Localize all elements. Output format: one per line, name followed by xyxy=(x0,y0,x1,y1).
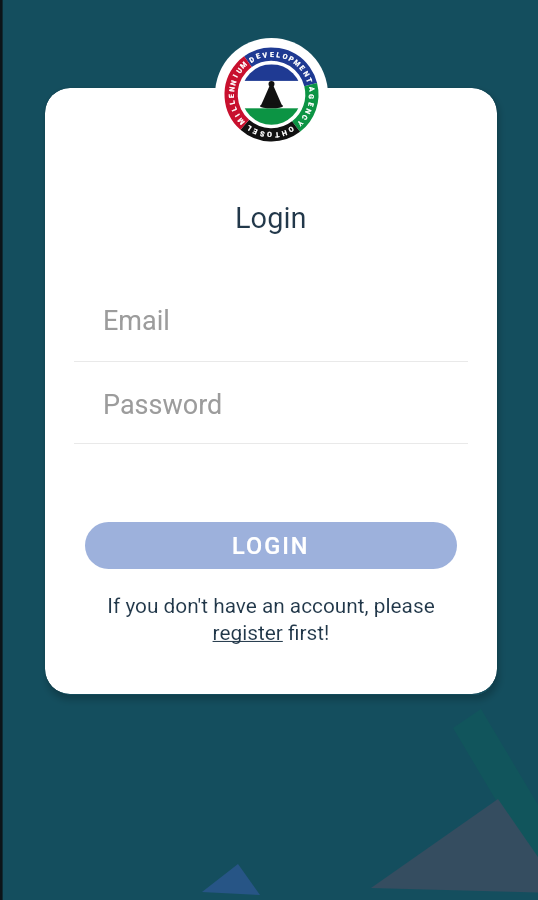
staticText: LOGIN xyxy=(232,532,310,560)
staticText: Password xyxy=(103,389,223,421)
staticText: If you don't have an account, please reg… xyxy=(87,594,455,645)
button[interactable]: LOGIN xyxy=(85,522,457,569)
button[interactable]: If you don't have an account, please reg… xyxy=(87,594,455,645)
staticText: Email xyxy=(103,305,170,337)
staticText: Login xyxy=(235,201,307,235)
other: Lesotho Millennium Development Agency lo… xyxy=(215,38,328,151)
